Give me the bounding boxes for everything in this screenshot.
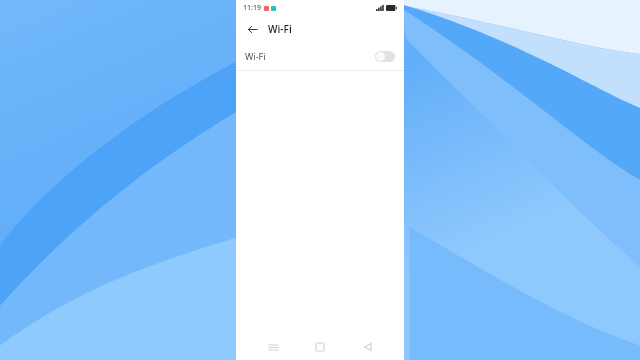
button[interactable]: Back bbox=[357, 336, 379, 358]
button[interactable]: Recent apps bbox=[262, 336, 284, 358]
button[interactable]: Wi-Fi toggle bbox=[375, 51, 395, 62]
button[interactable]: Wi-Fi bbox=[236, 42, 404, 70]
staticText: Wi-Fi bbox=[268, 22, 292, 36]
button[interactable]: Home bbox=[309, 336, 331, 358]
staticText: 11:19 bbox=[243, 3, 261, 13]
staticText: Wi-Fi bbox=[245, 50, 266, 62]
button[interactable]: Back bbox=[242, 19, 262, 39]
